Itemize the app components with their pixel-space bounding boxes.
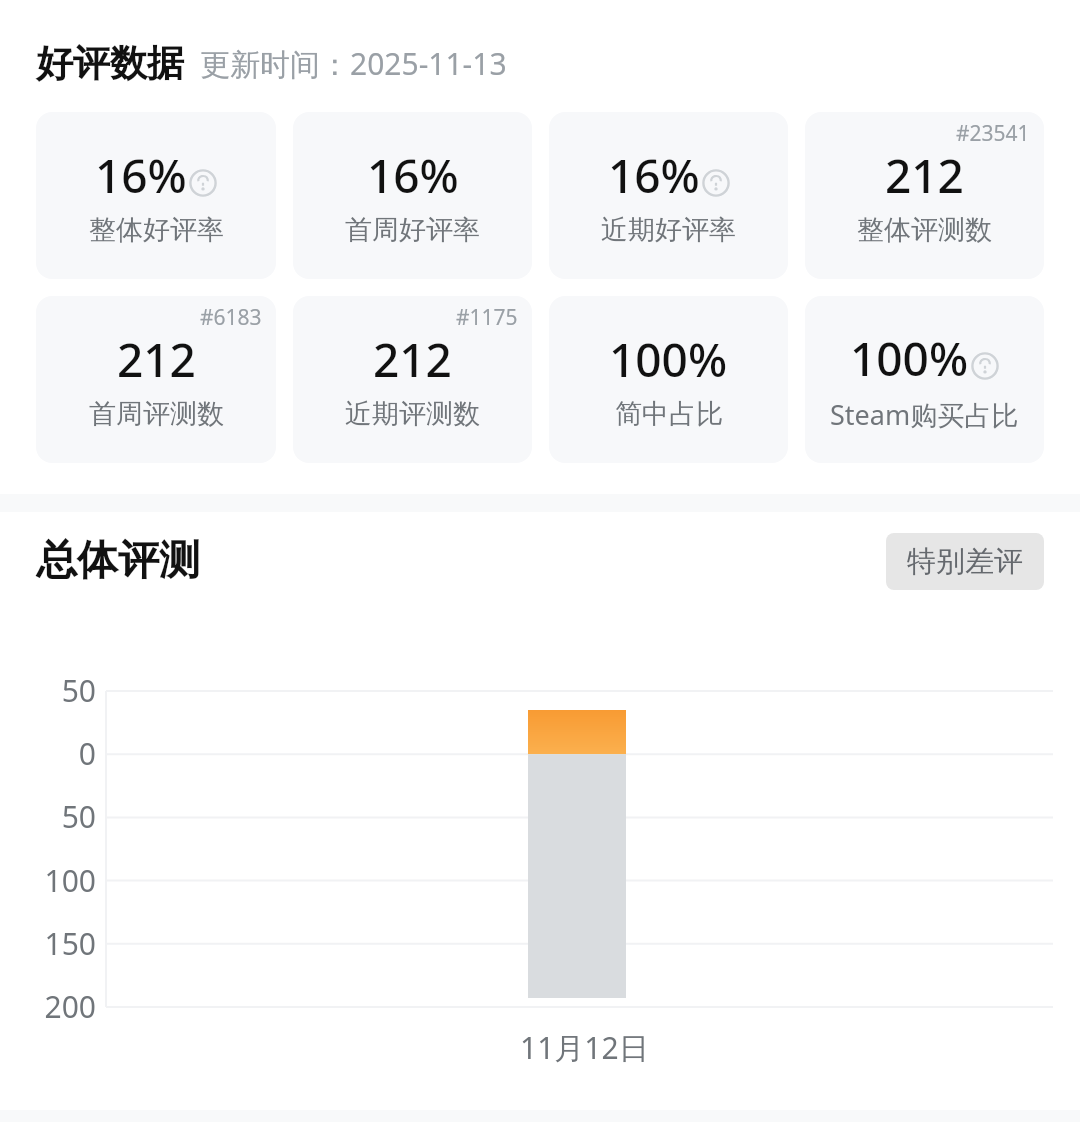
staticText: 总体评测 bbox=[36, 535, 200, 587]
staticText: 0 bbox=[10, 733, 96, 774]
button[interactable]: 16% bbox=[293, 112, 532, 279]
button[interactable]: #6183 bbox=[36, 296, 276, 463]
staticText: 11月12日 bbox=[520, 1027, 649, 1068]
staticText: 简中占比 bbox=[615, 397, 723, 431]
button[interactable]: 16% bbox=[549, 112, 788, 279]
button[interactable]: #23541 bbox=[805, 112, 1044, 279]
staticText: 16% bbox=[608, 144, 700, 207]
staticText: 首周好评率 bbox=[345, 213, 480, 247]
staticText: 16% bbox=[367, 144, 459, 207]
staticText: 更新时间：2025-11-13 bbox=[200, 43, 507, 84]
other: 说明 bbox=[971, 352, 999, 380]
staticText: 特别差评 bbox=[907, 543, 1023, 580]
button[interactable]: 100% bbox=[805, 296, 1044, 463]
staticText: 100 bbox=[10, 860, 96, 901]
staticText: 212 bbox=[373, 328, 452, 391]
staticText: #23541 bbox=[956, 119, 1030, 148]
button[interactable]: 特别差评 bbox=[886, 533, 1044, 590]
staticText: 200 bbox=[10, 986, 96, 1027]
button[interactable]: 16% bbox=[36, 112, 276, 279]
staticText: #6183 bbox=[200, 303, 262, 332]
staticText: 好评数据 bbox=[36, 40, 184, 87]
staticText: 100% bbox=[850, 327, 969, 390]
staticText: 50 bbox=[10, 796, 96, 837]
staticText: 212 bbox=[885, 144, 964, 207]
staticText: 首周评测数 bbox=[89, 397, 224, 431]
staticText: 近期好评率 bbox=[601, 213, 736, 247]
staticText: 整体好评率 bbox=[89, 213, 224, 247]
other: 说明 bbox=[702, 169, 730, 197]
staticText: Steam购买占比 bbox=[830, 396, 1019, 433]
button[interactable]: #1175 bbox=[293, 296, 532, 463]
button[interactable]: 100% bbox=[549, 296, 788, 463]
staticText: 212 bbox=[117, 328, 196, 391]
staticText: 100% bbox=[609, 328, 728, 391]
staticText: 16% bbox=[95, 144, 187, 207]
other: 说明 bbox=[189, 169, 217, 197]
staticText: 50 bbox=[10, 670, 96, 711]
staticText: 近期评测数 bbox=[345, 397, 480, 431]
staticText: 整体评测数 bbox=[857, 213, 992, 247]
staticText: 150 bbox=[10, 923, 96, 964]
staticText: #1175 bbox=[456, 303, 518, 332]
